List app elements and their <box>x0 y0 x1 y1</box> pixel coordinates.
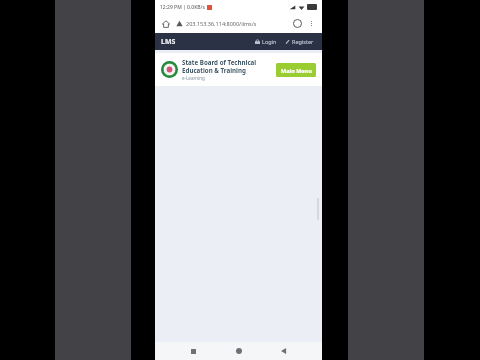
button[interactable]: Home <box>231 343 247 359</box>
button[interactable]: LMS <box>161 37 176 47</box>
button[interactable]: Home <box>160 18 171 29</box>
staticText: LMS <box>161 37 176 47</box>
button[interactable]: Main Menu <box>276 63 316 77</box>
staticText: State Board of Technical <box>182 58 257 66</box>
staticText: Education & Training <box>182 66 246 74</box>
button[interactable]: Back <box>276 343 292 359</box>
staticText: Register <box>292 38 314 45</box>
button[interactable]: Recents <box>185 343 201 359</box>
button[interactable]: Tabs <box>292 18 303 29</box>
staticText: Main Menu <box>281 67 312 74</box>
button[interactable]: More options <box>306 18 317 29</box>
staticText: e-Learning <box>182 75 205 81</box>
staticText: 12:29 PM | 0.0KB/s <box>160 4 205 11</box>
button[interactable]: Login <box>253 38 279 45</box>
staticText: 203.153.36.114:8000/ilms/s <box>186 20 257 27</box>
button[interactable]: Register <box>283 38 316 45</box>
staticText: Login <box>262 38 277 45</box>
